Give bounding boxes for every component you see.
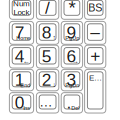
button[interactable]: 8 Up [36,21,59,44]
staticText: + [90,46,100,65]
button[interactable]: 1 End [9,69,34,91]
staticText: 6 [66,47,76,66]
staticText: 1 [15,70,25,89]
staticText: ↑ [52,34,55,41]
staticText: 5 [42,47,52,66]
staticText: 8 [42,23,52,42]
staticText: Del [71,105,79,111]
staticText: BS [88,2,102,14]
button[interactable]: Triple zero [36,93,59,113]
button[interactable]: 9 Page Up [61,21,83,44]
staticText: Num [13,0,30,8]
button[interactable]: 7 Home [9,21,34,44]
button[interactable]: Backspace [85,0,106,19]
staticText: Home [16,35,30,41]
button[interactable]: Divide [36,0,59,19]
staticText: 7 [15,23,25,42]
staticText: PgUp [65,35,79,41]
button[interactable]: Minus [85,21,106,44]
staticText: 2 [42,70,52,89]
staticText: 3 [66,70,76,89]
button[interactable]: 6 Right [61,45,83,68]
staticText: ← [23,57,30,65]
staticText: Enter [89,73,101,82]
button[interactable]: Multiply [61,0,83,19]
staticText: – [90,22,100,42]
staticText: Lock [13,8,29,17]
staticText: / [45,0,50,18]
button[interactable]: Plus [85,45,106,68]
staticText: PgDn [65,82,79,88]
button[interactable]: 4 Left [9,45,34,68]
button[interactable]: Enter [85,69,106,113]
button[interactable]: Decimal Delete [61,93,83,113]
staticText: * [68,0,75,18]
staticText: ↓ [52,81,55,88]
staticText: 000 [39,95,56,109]
staticText: 0 [15,93,25,112]
staticText: Ins [23,105,30,111]
button[interactable]: Num Lock [9,0,34,19]
staticText: 9 [66,23,76,42]
button[interactable]: 2 Down [36,69,59,91]
staticText: End [20,82,30,88]
staticText: 4 [15,47,25,66]
button[interactable]: 0 Insert [9,93,34,113]
button[interactable]: 3 Page Down [61,69,83,91]
button[interactable]: 5 [36,45,59,68]
staticText: → [72,57,79,65]
staticText: . [66,93,71,112]
